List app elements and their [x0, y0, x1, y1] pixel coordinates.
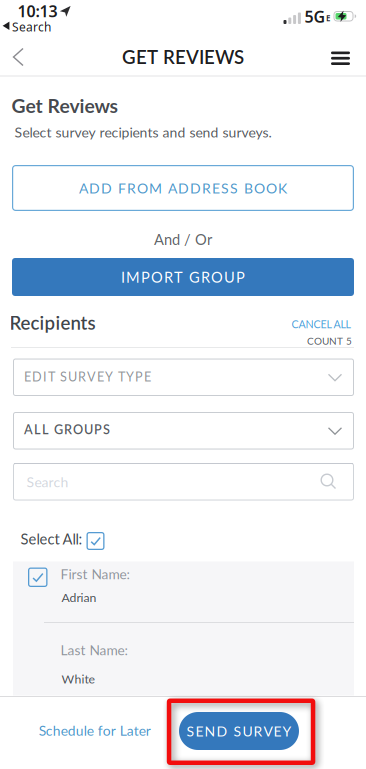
staticText: GET REVIEWS: [122, 45, 244, 68]
staticText: Schedule for Later: [39, 722, 151, 739]
staticText: Get Reviews: [11, 94, 117, 117]
staticText: CANCEL ALL: [291, 318, 350, 330]
button[interactable]: Search: [13, 463, 354, 500]
staticText: 10:13: [17, 0, 57, 22]
staticText: I M P O R T G R O U P: [121, 268, 245, 286]
staticText: E: [326, 13, 330, 23]
staticText: COUNT 5: [307, 335, 352, 347]
button[interactable]: I M P O R T G R O U P: [12, 258, 354, 296]
staticText: E D I T S U R V E Y T Y P E: [24, 369, 151, 384]
button[interactable]: S E N D S U R V E Y: [179, 712, 299, 750]
button[interactable]: CANCEL ALL: [291, 318, 350, 330]
button[interactable]: A L L G R O U P S: [13, 412, 354, 449]
staticText: A L L G R O U P S: [24, 422, 110, 437]
button[interactable]: Menu: [319, 39, 362, 77]
staticText: First Name:: [60, 566, 129, 582]
staticText: S E N D S U R V E Y: [186, 723, 291, 739]
button[interactable]: Select Adrian White: [28, 567, 47, 587]
staticText: Last Name:: [60, 642, 127, 658]
button[interactable]: Schedule for Later: [33, 716, 157, 745]
staticText: Recipients: [9, 311, 95, 334]
button[interactable]: E D I T S U R V E Y T Y P E: [13, 358, 354, 396]
button[interactable]: Select All: [86, 532, 104, 550]
staticText: Adrian: [61, 590, 96, 605]
staticText: And / Or: [154, 230, 212, 248]
staticText: Search: [12, 19, 51, 35]
staticText: White: [61, 671, 94, 686]
staticText: A D D F R O M A D D R E S S B O O K: [79, 180, 287, 196]
staticText: 5G: [304, 6, 325, 27]
staticText: Search: [26, 473, 68, 490]
staticText: Select survey recipients and send survey…: [14, 124, 271, 141]
button[interactable]: A D D F R O M A D D R E S S B O O K: [12, 165, 354, 211]
staticText: Select All:: [20, 530, 82, 548]
button[interactable]: Back: [0, 0, 36, 40]
